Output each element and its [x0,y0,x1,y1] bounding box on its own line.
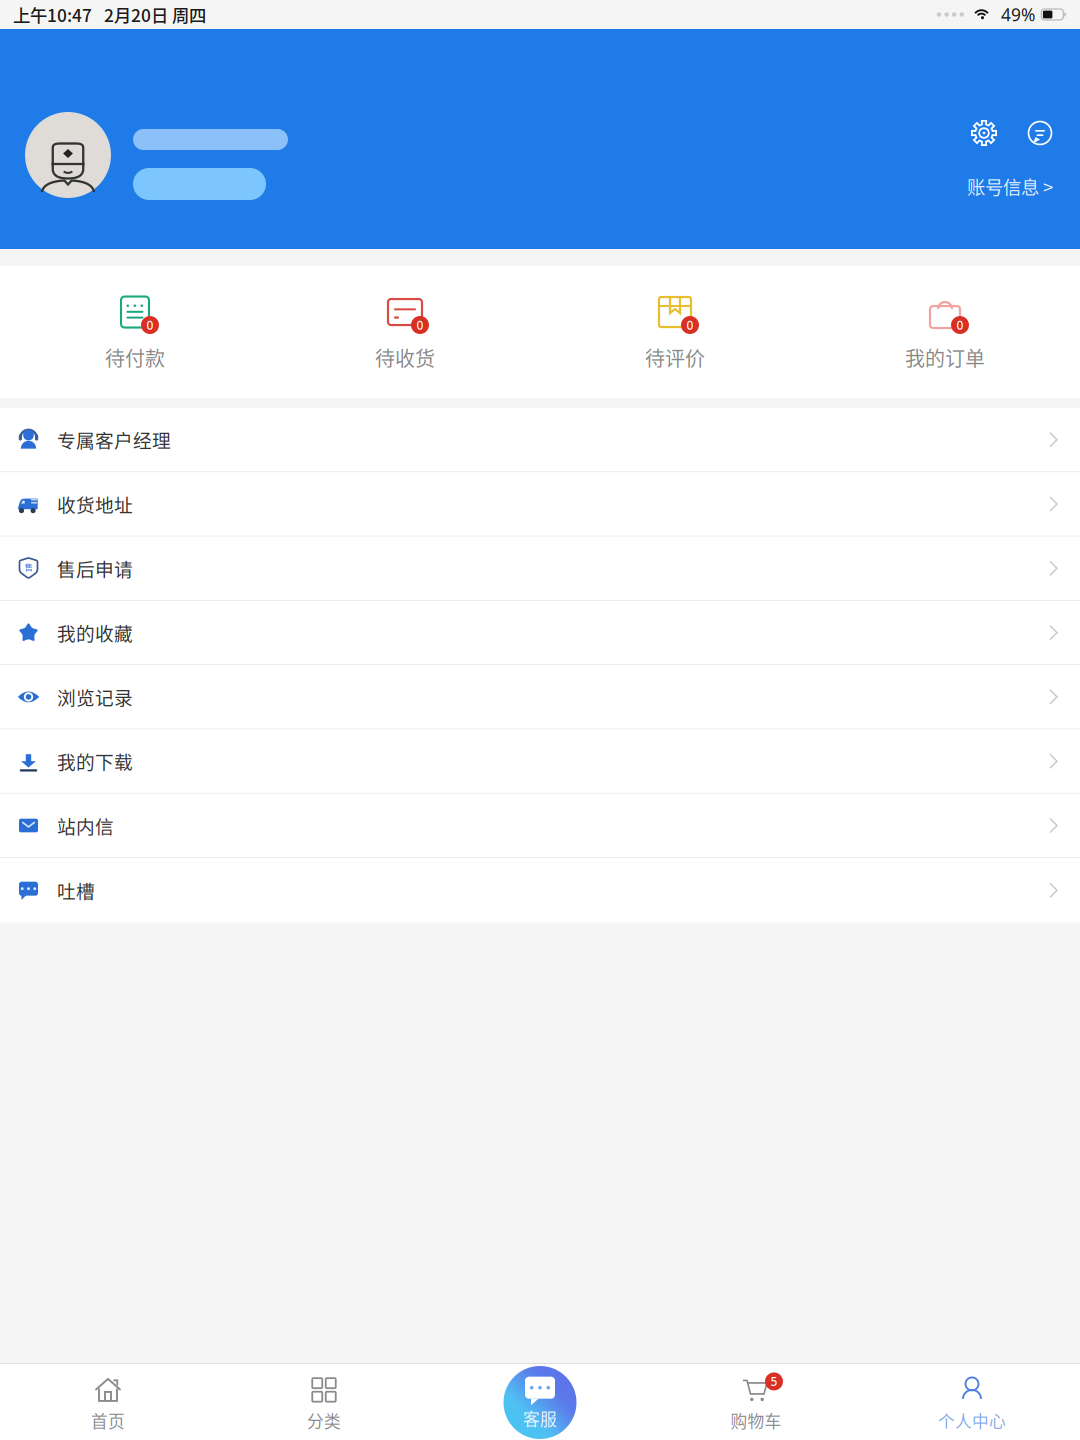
staticText: 我的收藏 [57,619,133,646]
staticText: 客服 [523,1406,557,1430]
button[interactable]: 收货地址 [0,472,1080,537]
button[interactable]: 0 [810,288,1080,376]
staticText: 0 [416,317,423,333]
button[interactable]: 账号信息 > [967,173,1053,200]
button[interactable]: 我的下载 [0,729,1080,794]
button[interactable]: 首页 [0,1364,216,1439]
button[interactable]: 浏览记录 [0,665,1080,729]
staticText: 我的下载 [57,748,133,775]
button[interactable]: 客服 [503,1366,576,1439]
staticText: 站内信 [57,812,114,839]
button[interactable]: 专属客户经理 [0,408,1080,472]
button[interactable]: 0 [0,288,270,376]
button[interactable]: 站内信 [0,794,1080,858]
staticText: 售 [24,561,32,573]
staticText: 售后申请 [57,555,133,582]
staticText: 上午10:47 2月20日 周四 [13,2,206,27]
button[interactable]: 售 [0,537,1080,601]
staticText: 0 [686,317,693,333]
staticText: 首页 [91,1408,125,1432]
button[interactable]: 5 [648,1364,864,1439]
staticText: 5 [770,1373,777,1389]
staticText: 49% [1001,3,1035,26]
staticText: 专属客户经理 [57,426,171,453]
staticText: 收货地址 [57,490,133,517]
staticText: 我的订单 [905,343,985,372]
button[interactable]: 设置 [971,120,997,146]
button[interactable]: 我的收藏 [0,601,1080,665]
staticText: 账号信息 > [967,173,1053,200]
button[interactable]: 吐槽 [0,858,1080,922]
button[interactable]: 0 [270,288,540,376]
staticText: 吐槽 [57,877,95,904]
button[interactable]: 0 [540,288,810,376]
staticText: 购物车 [730,1408,781,1432]
staticText: 待收货 [375,343,435,372]
staticText: 个人中心 [938,1408,1006,1432]
staticText: 0 [146,317,153,333]
staticText: 0 [956,317,963,333]
staticText: 待评价 [645,343,705,372]
button[interactable]: 个人中心 [864,1364,1080,1439]
staticText: 浏览记录 [57,683,133,710]
staticText: 待付款 [105,343,165,372]
button[interactable]: 消息 [1027,120,1053,146]
button[interactable]: 分类 [216,1364,432,1439]
staticText: 分类 [307,1408,341,1432]
